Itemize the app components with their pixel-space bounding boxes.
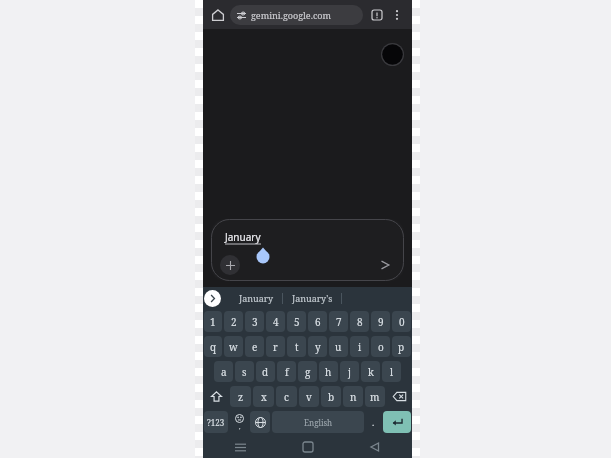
staticText: s — [242, 365, 247, 379]
staticText: 8 — [357, 315, 363, 329]
button[interactable]: r — [266, 336, 285, 357]
button[interactable]: ?123 — [204, 411, 228, 433]
button[interactable]: 6 — [308, 311, 327, 332]
button[interactable]: l — [382, 361, 401, 382]
button[interactable]: 2 — [224, 311, 243, 332]
button[interactable]: p — [392, 336, 411, 357]
button[interactable]: January — [230, 287, 282, 309]
staticText: q — [210, 340, 217, 354]
button[interactable]: q — [204, 336, 222, 357]
staticText: c — [284, 390, 289, 404]
staticText: a — [221, 365, 227, 379]
staticText: 6 — [315, 315, 321, 329]
staticText: January — [239, 292, 274, 304]
button[interactable]: 1 — [204, 311, 222, 332]
staticText: o — [378, 340, 384, 354]
button[interactable]: Expand suggestions — [204, 290, 221, 307]
staticText: , — [239, 423, 241, 431]
staticText: h — [325, 365, 332, 379]
staticText: January — [225, 230, 261, 244]
button[interactable]: English — [272, 411, 364, 433]
button[interactable]: i — [350, 336, 369, 357]
button[interactable]: z — [230, 386, 251, 407]
staticText: English — [304, 417, 333, 428]
staticText: d — [262, 365, 269, 379]
button[interactable]: e — [245, 336, 264, 357]
button[interactable]: . — [366, 411, 381, 433]
button[interactable]: Recents — [229, 436, 251, 458]
button[interactable]: a — [214, 361, 233, 382]
button[interactable]: January's — [283, 287, 341, 309]
button[interactable]: g — [298, 361, 317, 382]
staticText: l — [390, 365, 394, 379]
staticText: m — [370, 390, 380, 404]
button[interactable]: s — [235, 361, 254, 382]
button[interactable]: 7 — [329, 311, 348, 332]
staticText: 0 — [399, 315, 405, 329]
button[interactable]: Add — [220, 255, 240, 275]
button[interactable]: f — [277, 361, 296, 382]
button[interactable]: Home — [297, 436, 319, 458]
button[interactable]: gemini.google.com — [230, 5, 363, 25]
staticText: t — [295, 340, 299, 354]
staticText: z — [238, 390, 244, 404]
staticText: ?123 — [207, 417, 225, 428]
staticText: i — [358, 340, 362, 354]
staticText: r — [273, 340, 278, 354]
button[interactable]: 4 — [266, 311, 285, 332]
button[interactable]: Account — [381, 43, 404, 66]
button[interactable]: 0 — [392, 311, 411, 332]
button[interactable]: Change language — [250, 411, 270, 433]
staticText: 1 — [210, 315, 216, 329]
button[interactable]: c — [276, 386, 297, 407]
button[interactable]: h — [319, 361, 338, 382]
button[interactable]: Backspace — [387, 386, 411, 407]
button[interactable]: Enter — [383, 411, 411, 433]
button[interactable]: 5 — [287, 311, 306, 332]
button[interactable]: d — [256, 361, 275, 382]
button[interactable]: Send — [375, 255, 395, 275]
button[interactable]: y — [308, 336, 327, 357]
button[interactable]: Emoji — [230, 411, 248, 433]
button[interactable]: u — [329, 336, 348, 357]
staticText: e — [252, 340, 258, 354]
staticText: g — [305, 365, 311, 379]
staticText: y — [315, 340, 321, 354]
staticText: n — [350, 390, 357, 404]
button[interactable]: k — [361, 361, 380, 382]
button[interactable]: 9 — [371, 311, 390, 332]
button[interactable]: Back — [364, 436, 386, 458]
staticText: x — [261, 390, 267, 404]
staticText: 2 — [231, 315, 237, 329]
staticText: w — [229, 340, 238, 354]
staticText: 3 — [252, 315, 258, 329]
button[interactable]: o — [371, 336, 390, 357]
button[interactable]: j — [340, 361, 359, 382]
button[interactable]: January — [211, 219, 404, 281]
staticText: . — [372, 416, 375, 428]
button[interactable]: Home — [208, 5, 228, 25]
button[interactable]: Shift — [204, 386, 228, 407]
button[interactable]: 3 — [245, 311, 264, 332]
staticText: 5 — [294, 315, 300, 329]
staticText: b — [328, 390, 335, 404]
staticText: 7 — [336, 315, 342, 329]
button[interactable]: m — [365, 386, 385, 407]
button[interactable]: More options — [387, 5, 407, 25]
button[interactable]: x — [253, 386, 274, 407]
staticText: u — [335, 340, 342, 354]
staticText: v — [306, 390, 312, 404]
button[interactable]: w — [224, 336, 243, 357]
button[interactable]: 8 — [350, 311, 369, 332]
button[interactable]: t — [287, 336, 306, 357]
button[interactable]: v — [299, 386, 319, 407]
staticText: 9 — [378, 315, 384, 329]
button[interactable]: b — [321, 386, 341, 407]
staticText: January's — [292, 292, 333, 304]
staticText: k — [368, 365, 374, 379]
staticText: gemini.google.com — [251, 9, 332, 21]
staticText: p — [398, 340, 405, 354]
button[interactable]: Page info — [367, 5, 387, 25]
staticText: j — [348, 365, 351, 379]
button[interactable]: n — [343, 386, 363, 407]
